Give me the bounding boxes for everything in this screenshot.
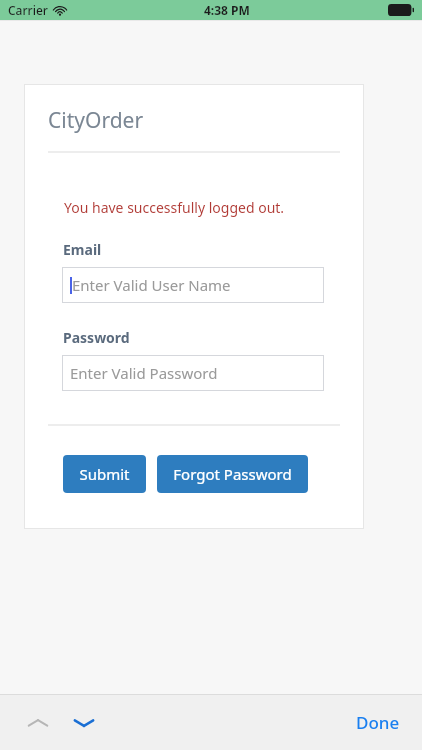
staticText: Enter Valid User Name: [72, 275, 231, 295]
staticText: Submit: [79, 464, 130, 484]
button[interactable]: Enter Valid Password: [62, 355, 324, 391]
button[interactable]: Submit: [63, 455, 146, 493]
staticText: CityOrder: [48, 106, 144, 135]
staticText: 4:38 PM: [204, 2, 250, 18]
button[interactable]: Forgot Password: [157, 455, 308, 493]
staticText: Email: [63, 240, 102, 259]
staticText: Forgot Password: [173, 464, 292, 484]
staticText: Done: [356, 711, 400, 734]
button[interactable]: Done: [338, 701, 418, 744]
staticText: Carrier: [8, 2, 48, 18]
button[interactable]: Previous field: [18, 703, 58, 743]
button[interactable]: Next field: [64, 703, 104, 743]
staticText: You have successfully logged out.: [64, 198, 285, 217]
staticText: Enter Valid Password: [70, 363, 218, 383]
staticText: Password: [63, 328, 130, 347]
button[interactable]: Enter Valid User Name: [62, 267, 324, 303]
